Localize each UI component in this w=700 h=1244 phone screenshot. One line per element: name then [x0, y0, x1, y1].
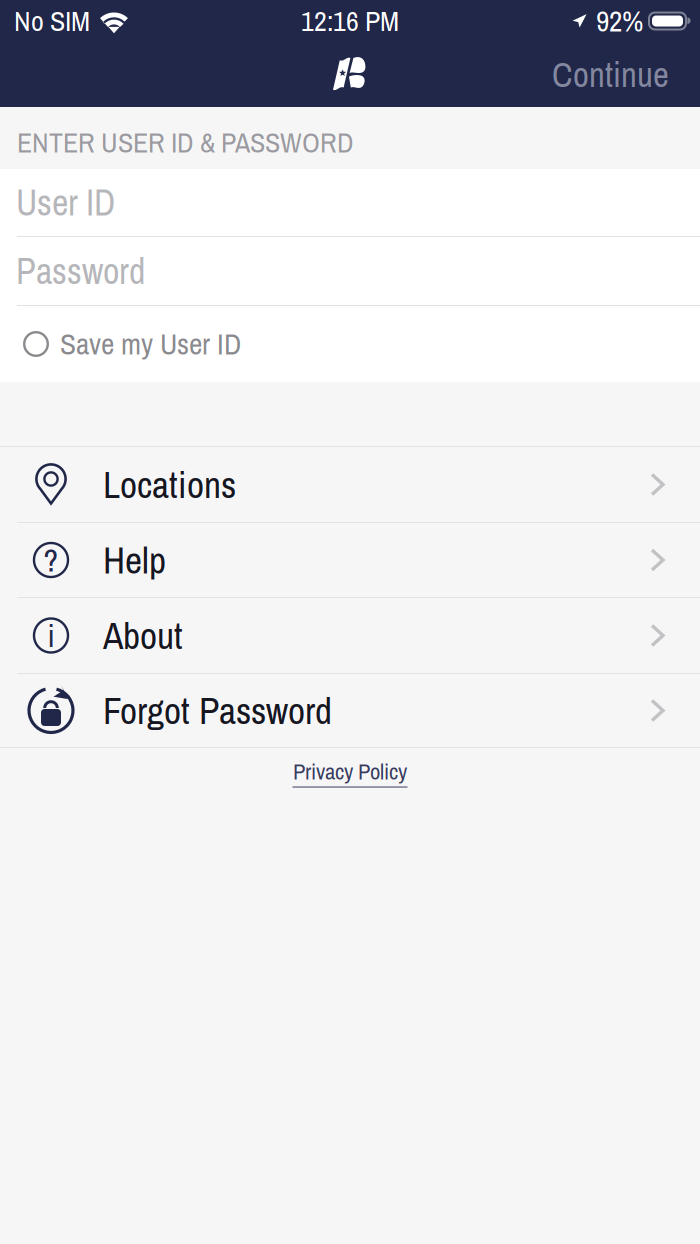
staticText: Privacy Policy [293, 756, 407, 786]
staticText: No SIM [14, 2, 90, 40]
button[interactable]: Save my User ID [0, 306, 700, 382]
button[interactable]: Continue [521, 41, 700, 108]
button[interactable]: Forgot Password [0, 674, 700, 748]
button[interactable]: i [0, 598, 700, 674]
staticText: 92% [596, 1, 643, 41]
staticText: Password [16, 247, 145, 295]
staticText: Continue [552, 51, 669, 98]
staticText: i [47, 614, 54, 657]
button[interactable]: Privacy Policy [272, 748, 427, 787]
staticText: Locations [103, 459, 236, 510]
staticText: ENTER USER ID & PASSWORD [17, 124, 354, 161]
staticText: Forgot Password [103, 685, 332, 736]
staticText: About [103, 610, 183, 661]
staticText: 12:16 PM [301, 2, 399, 40]
staticText: User ID [16, 178, 115, 227]
staticText: Save my User ID [60, 324, 241, 364]
staticText: ? [43, 538, 58, 581]
button[interactable]: ? [0, 523, 700, 598]
staticText: Help [103, 535, 166, 585]
button[interactable]: Locations [0, 447, 700, 523]
